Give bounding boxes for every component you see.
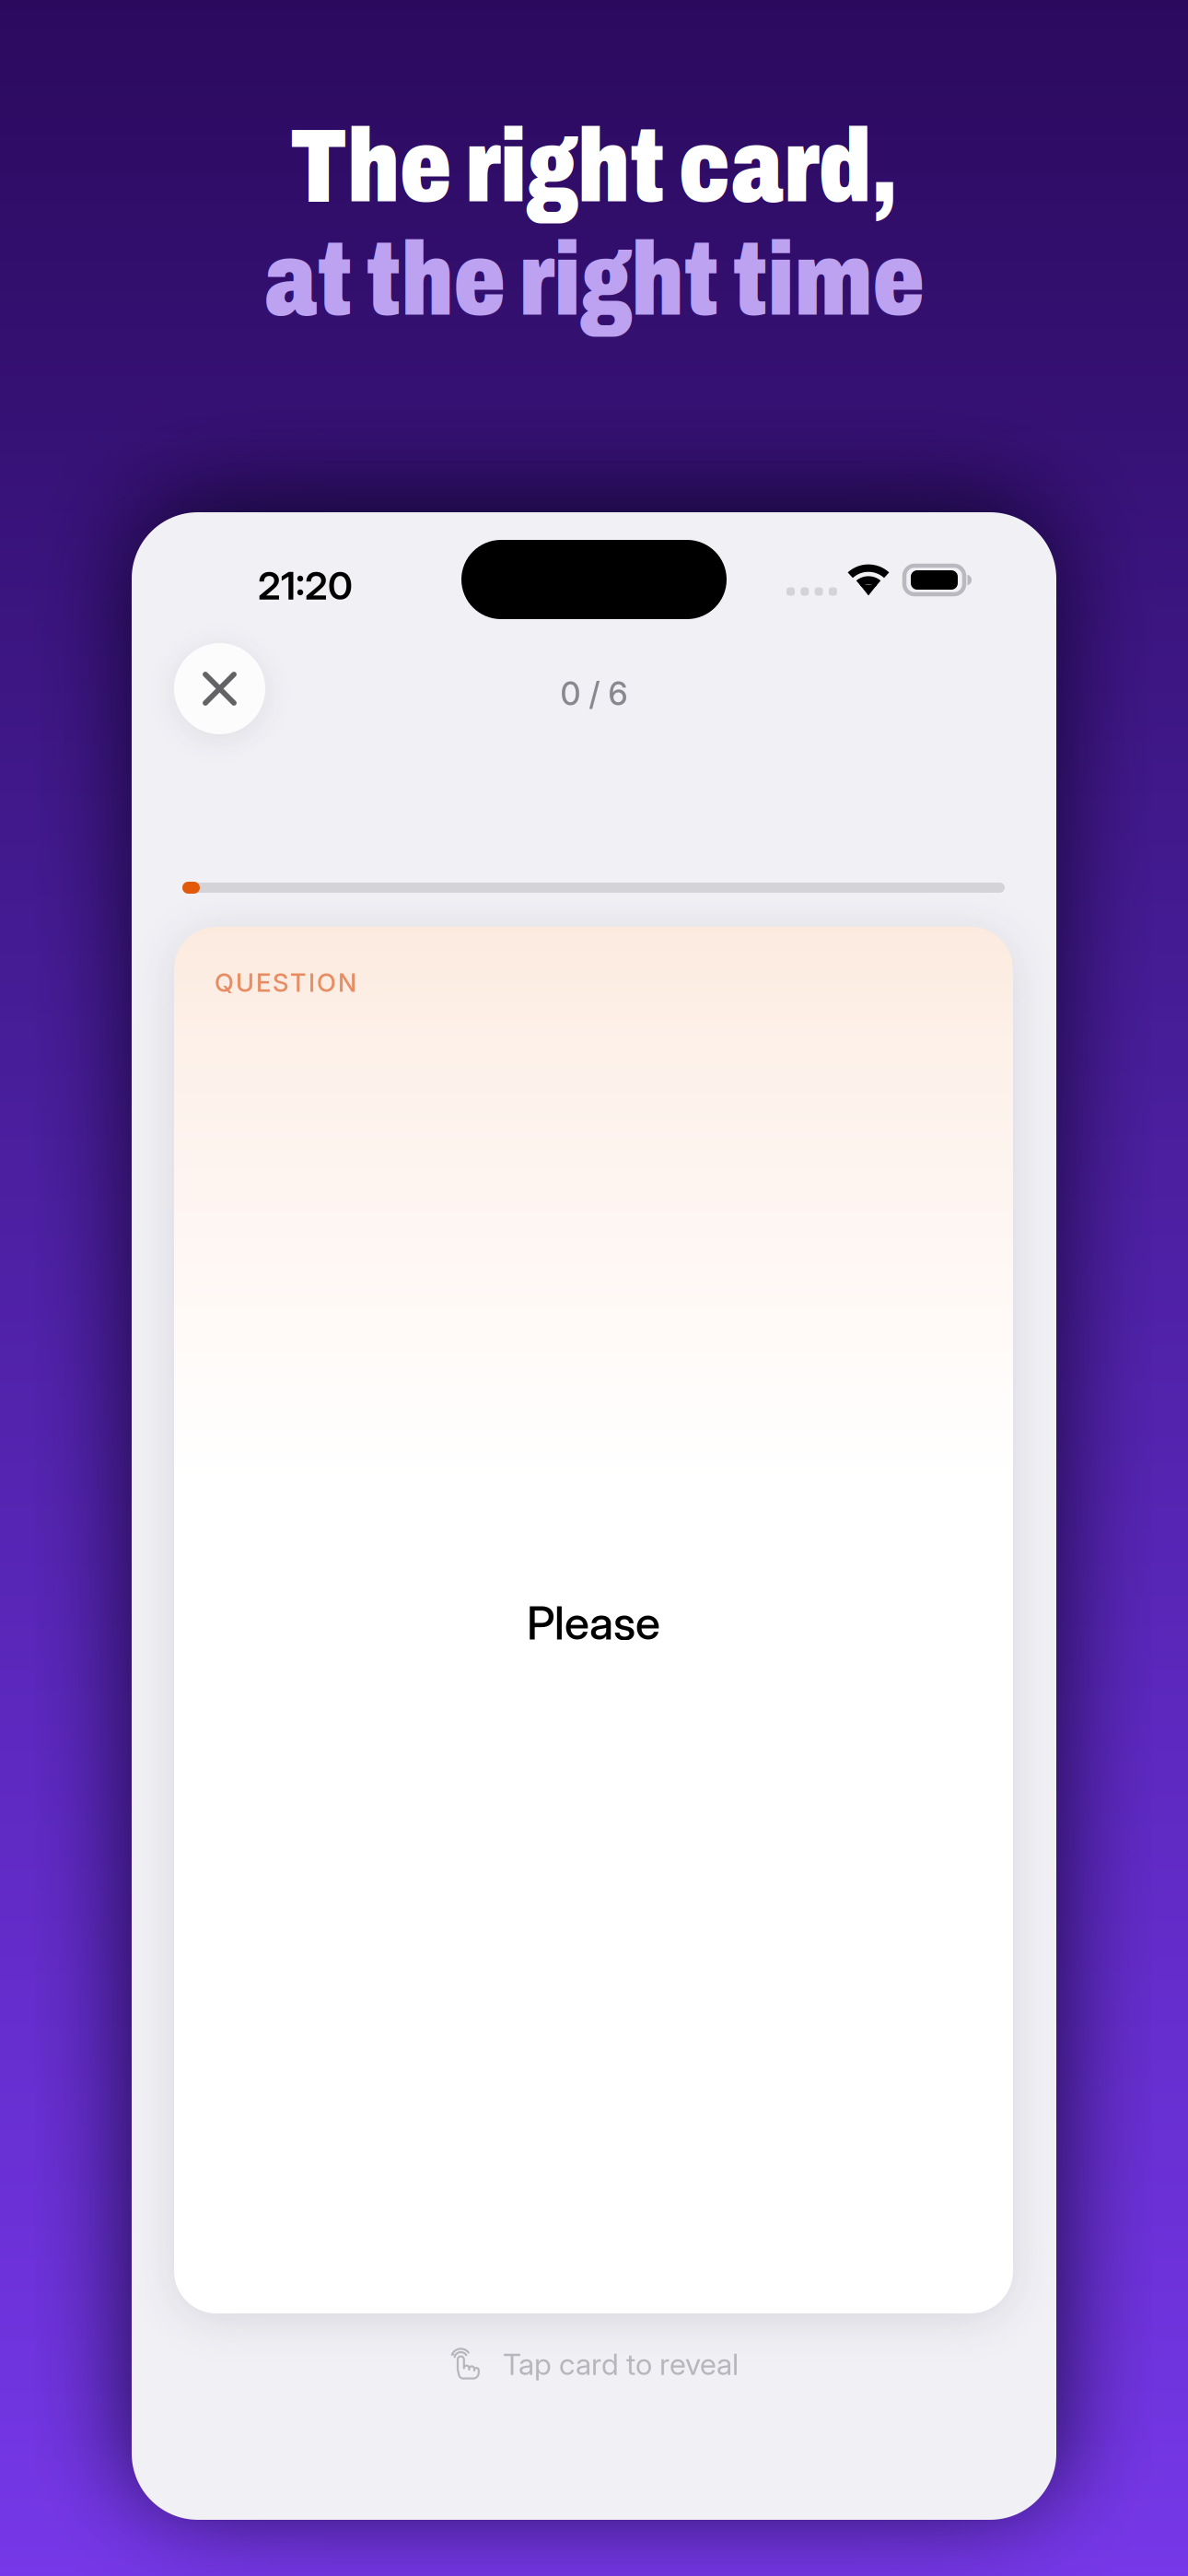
staticText: The right card, bbox=[290, 110, 898, 223]
staticText: 0 / 6 bbox=[560, 674, 628, 713]
staticText: 21:20 bbox=[258, 562, 353, 609]
staticText: Tap card to reveal bbox=[503, 2346, 739, 2382]
staticText: at the right time bbox=[264, 223, 924, 337]
staticText: QUESTION bbox=[215, 967, 356, 998]
staticText: Please bbox=[527, 1595, 660, 1650]
button[interactable]: Close bbox=[174, 643, 265, 734]
button[interactable]: QUESTION bbox=[174, 927, 1013, 2313]
